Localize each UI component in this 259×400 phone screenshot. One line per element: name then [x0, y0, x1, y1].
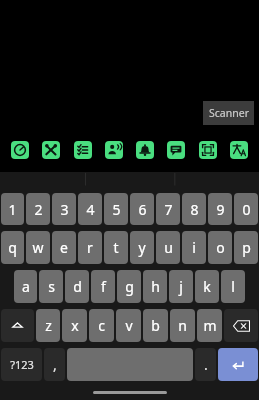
button[interactable]: 1 — [1, 193, 24, 225]
button[interactable]: 6 — [130, 193, 154, 225]
staticText: 7 — [164, 200, 173, 219]
staticText: y — [138, 238, 146, 257]
button[interactable]: Space — [67, 348, 193, 381]
staticText: o — [216, 238, 225, 257]
button[interactable]: y — [130, 231, 154, 264]
staticText: 5 — [112, 200, 121, 219]
button[interactable]: r — [78, 231, 102, 264]
button[interactable]: c — [89, 309, 114, 342]
button[interactable]: l — [221, 270, 245, 303]
button[interactable]: Scan — [199, 141, 217, 159]
button[interactable]: Scanner — [203, 101, 254, 125]
staticText: 8 — [190, 200, 199, 219]
staticText: x — [71, 316, 79, 335]
staticText: , — [53, 355, 57, 374]
staticText: m — [203, 316, 217, 335]
button[interactable]: 3 — [52, 193, 76, 225]
staticText: c — [98, 316, 105, 335]
button[interactable]: Translate — [230, 141, 248, 159]
staticText: h — [151, 277, 160, 296]
staticText: 1 — [8, 200, 17, 219]
staticText: v — [125, 316, 133, 335]
staticText: 9 — [216, 200, 225, 219]
staticText: 0 — [242, 200, 251, 219]
button[interactable]: h — [143, 270, 167, 303]
staticText: f — [101, 277, 106, 296]
button[interactable]: Tools — [42, 141, 60, 159]
staticText: w — [32, 238, 44, 257]
staticText: 4 — [86, 200, 95, 219]
button[interactable]: b — [143, 309, 168, 342]
button[interactable]: s — [39, 270, 63, 303]
staticText: u — [164, 238, 173, 257]
button[interactable]: , — [44, 348, 65, 381]
button[interactable]: e — [52, 231, 76, 264]
button[interactable]: d — [65, 270, 89, 303]
button[interactable]: Backspace — [224, 309, 258, 342]
staticText: l — [231, 277, 235, 296]
button[interactable]: Checklist — [74, 141, 92, 159]
staticText: i — [192, 238, 196, 257]
button[interactable]: 8 — [182, 193, 206, 225]
button[interactable]: Contact — [105, 141, 123, 159]
button[interactable]: j — [169, 270, 193, 303]
staticText: r — [87, 238, 93, 257]
staticText: a — [22, 277, 30, 296]
staticText: d — [73, 277, 82, 296]
staticText: . — [204, 355, 208, 374]
button[interactable]: n — [170, 309, 195, 342]
button[interactable]: o — [208, 231, 232, 264]
button[interactable]: q — [1, 231, 24, 264]
staticText: n — [178, 316, 187, 335]
button[interactable]: Speedometer — [11, 141, 29, 159]
button[interactable]: 0 — [234, 193, 258, 225]
staticText: Scanner — [209, 106, 249, 120]
staticText: ?123 — [10, 357, 34, 372]
button[interactable]: a — [14, 270, 37, 303]
button[interactable]: t — [104, 231, 128, 264]
button[interactable]: 2 — [26, 193, 50, 225]
button[interactable]: w — [26, 231, 50, 264]
staticText: q — [8, 238, 17, 257]
button[interactable]: Message — [167, 141, 185, 159]
button[interactable]: Alarm — [136, 141, 154, 159]
button[interactable]: . — [195, 348, 216, 381]
button[interactable]: x — [62, 309, 87, 342]
button[interactable]: v — [116, 309, 141, 342]
button[interactable]: k — [195, 270, 219, 303]
button[interactable]: u — [156, 231, 180, 264]
button[interactable]: 7 — [156, 193, 180, 225]
button[interactable]: p — [234, 231, 258, 264]
button[interactable]: Enter — [218, 348, 258, 381]
staticText: p — [242, 238, 251, 257]
button[interactable]: m — [197, 309, 222, 342]
staticText: s — [48, 277, 55, 296]
button[interactable]: f — [91, 270, 115, 303]
button[interactable]: i — [182, 231, 206, 264]
button[interactable]: ?123 — [1, 348, 42, 381]
staticText: z — [45, 316, 52, 335]
staticText: t — [113, 238, 119, 257]
button[interactable]: g — [117, 270, 141, 303]
staticText: g — [125, 277, 134, 296]
staticText: b — [151, 316, 160, 335]
button[interactable]: z — [36, 309, 60, 342]
staticText: j — [179, 277, 183, 296]
staticText: 2 — [34, 200, 43, 219]
staticText: 6 — [138, 200, 147, 219]
button[interactable]: 9 — [208, 193, 232, 225]
button[interactable]: Shift — [1, 309, 34, 342]
button[interactable]: 4 — [78, 193, 102, 225]
staticText: e — [60, 238, 68, 257]
staticText: 3 — [60, 200, 69, 219]
staticText: k — [203, 277, 211, 296]
button[interactable]: 5 — [104, 193, 128, 225]
